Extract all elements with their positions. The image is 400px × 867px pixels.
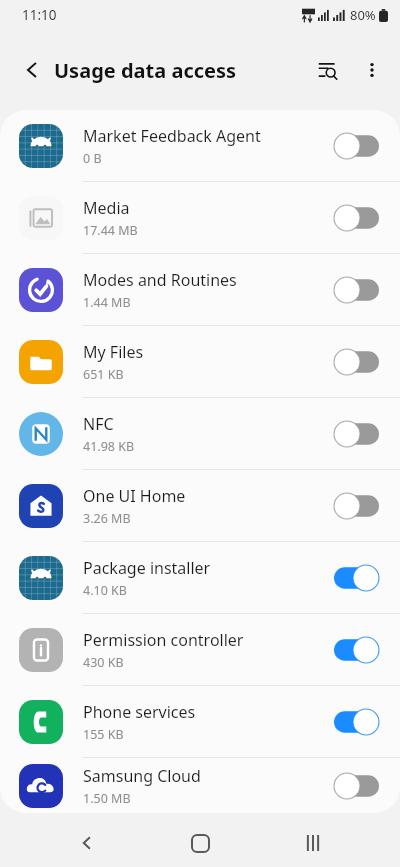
button[interactable]: Modes and Routines bbox=[0, 254, 400, 325]
button[interactable]: Toggle Modes and Routines bbox=[330, 270, 382, 310]
button[interactable]: Permission controller bbox=[0, 614, 400, 685]
button[interactable]: Toggle Samsung Cloud bbox=[330, 766, 382, 806]
button[interactable]: Recents bbox=[287, 819, 339, 867]
staticText: 1.44 MB bbox=[83, 294, 131, 311]
staticText: Usage data access bbox=[54, 57, 237, 84]
staticText: 17.44 MB bbox=[83, 222, 138, 239]
staticText: 4.10 KB bbox=[83, 582, 127, 599]
button[interactable]: Phone services bbox=[0, 686, 400, 757]
staticText: 651 KB bbox=[83, 366, 124, 383]
staticText: Permission controller bbox=[83, 629, 244, 651]
button[interactable]: Toggle My Files bbox=[330, 342, 382, 382]
button[interactable]: Search bbox=[306, 48, 350, 92]
staticText: One UI Home bbox=[83, 485, 186, 507]
staticText: Market Feedback Agent bbox=[83, 125, 261, 147]
button[interactable]: Media bbox=[0, 182, 400, 253]
button[interactable]: Toggle Permission controller bbox=[330, 630, 382, 670]
staticText: Media bbox=[83, 197, 130, 219]
staticText: 1.50 MB bbox=[83, 790, 131, 807]
button[interactable]: Toggle NFC bbox=[330, 414, 382, 454]
button[interactable]: Home bbox=[174, 819, 226, 867]
staticText: Modes and Routines bbox=[83, 269, 237, 291]
staticText: 41.98 KB bbox=[83, 438, 135, 455]
button[interactable]: Samsung Cloud bbox=[0, 758, 400, 813]
staticText: Samsung Cloud bbox=[83, 765, 201, 787]
button[interactable]: Back bbox=[10, 48, 54, 92]
button[interactable]: My Files bbox=[0, 326, 400, 397]
button[interactable]: NFC bbox=[0, 398, 400, 469]
button[interactable]: Back bbox=[61, 819, 113, 867]
staticText: Phone services bbox=[83, 701, 196, 723]
button[interactable]: One UI Home bbox=[0, 470, 400, 541]
button[interactable]: Package installer bbox=[0, 542, 400, 613]
staticText: 0 B bbox=[83, 150, 102, 167]
staticText: 80% bbox=[350, 6, 376, 24]
button[interactable]: Toggle Phone services bbox=[330, 702, 382, 742]
button[interactable]: Toggle Package installer bbox=[330, 558, 382, 598]
staticText: 11:10 bbox=[22, 6, 57, 24]
button[interactable]: More options bbox=[350, 48, 394, 92]
staticText: My Files bbox=[83, 341, 144, 363]
staticText: 3.26 MB bbox=[83, 510, 131, 527]
button[interactable]: Toggle Market Feedback Agent bbox=[330, 126, 382, 166]
button[interactable]: Toggle One UI Home bbox=[330, 486, 382, 526]
staticText: 155 KB bbox=[83, 726, 124, 743]
staticText: Package installer bbox=[83, 557, 211, 579]
button[interactable]: Toggle Media bbox=[330, 198, 382, 238]
staticText: NFC bbox=[83, 413, 114, 435]
button[interactable]: Market Feedback Agent bbox=[0, 110, 400, 181]
staticText: 430 KB bbox=[83, 654, 124, 671]
